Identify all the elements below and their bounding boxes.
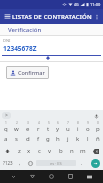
staticText: q (4, 125, 8, 133)
button[interactable]: j (63, 133, 73, 145)
staticText: 7 (67, 121, 69, 125)
button[interactable]: 0 (93, 121, 103, 133)
staticText: u (66, 125, 70, 133)
button[interactable]: ñ (93, 133, 103, 145)
staticText: v (48, 147, 52, 155)
button[interactable]: a (0, 133, 11, 145)
staticText: es · ES (50, 161, 62, 166)
button[interactable]: 9 (83, 121, 93, 133)
staticText: x (27, 147, 31, 155)
button[interactable]: s (11, 133, 22, 145)
button[interactable]: Ocultar teclado (8, 171, 19, 182)
button[interactable]: k (73, 133, 83, 145)
staticText: > (5, 112, 8, 119)
button[interactable]: m (77, 145, 88, 157)
staticText: ?123 (3, 160, 13, 166)
staticText: 1 (5, 121, 7, 125)
staticText: ñ (96, 135, 100, 143)
button[interactable]: Verificación (0, 24, 103, 35)
button[interactable]: Mayúsculas (0, 145, 14, 157)
staticText: r (37, 125, 40, 133)
button[interactable]: f (33, 133, 43, 145)
button[interactable]: 3 (22, 121, 33, 133)
button[interactable]: ?123 (0, 157, 15, 169)
staticText: g (46, 135, 50, 143)
staticText: 4 (38, 121, 40, 125)
staticText: c (38, 147, 41, 155)
button[interactable]: 1 (0, 121, 11, 133)
button[interactable]: Intro (91, 159, 100, 168)
button[interactable]: Punto (77, 157, 87, 169)
staticText: 4G (74, 2, 79, 7)
button[interactable]: b (55, 145, 66, 157)
button[interactable]: v (44, 145, 55, 157)
button[interactable]: l (83, 133, 93, 145)
button[interactable]: 4 (33, 121, 43, 133)
button[interactable]: c (34, 145, 44, 157)
button[interactable]: n (66, 145, 77, 157)
button[interactable]: Borrar (88, 145, 103, 157)
button[interactable]: d (22, 133, 33, 145)
staticText: j (67, 135, 69, 143)
button[interactable]: z (14, 145, 24, 157)
button[interactable]: h (53, 133, 63, 145)
staticText: d (26, 135, 30, 143)
staticText: n (70, 147, 74, 155)
staticText: h (56, 135, 60, 143)
staticText: b (59, 147, 63, 155)
button[interactable]: Teclado (84, 171, 95, 182)
button[interactable]: Coma (15, 157, 25, 169)
button[interactable]: 5 (43, 121, 53, 133)
button[interactable]: 7 (63, 121, 73, 133)
staticText: z (18, 147, 21, 155)
button[interactable]: Espacio (36, 160, 76, 166)
staticText: , (19, 160, 21, 167)
staticText: 9 (87, 121, 89, 125)
staticText: . (81, 160, 83, 167)
staticText: LISTAS DE CONTRATACIÓN (12, 13, 92, 21)
staticText: Verificación (8, 26, 42, 34)
button[interactable]: Atrás (27, 171, 38, 182)
staticText: e (26, 125, 30, 133)
staticText: 5 (48, 121, 50, 125)
staticText: 6 (57, 121, 59, 125)
button[interactable]: Sugerencias (2, 112, 11, 119)
staticText: w (14, 125, 19, 133)
staticText: f (37, 135, 40, 143)
button[interactable]: 2 (11, 121, 22, 133)
staticText: DNI (3, 38, 11, 43)
staticText: p (96, 125, 100, 133)
staticText: Confirmar (18, 69, 45, 76)
button[interactable]: Más opciones (91, 11, 102, 22)
staticText: 3 (27, 121, 29, 125)
staticText: 12345678Z (3, 44, 37, 53)
button[interactable]: 12345678Z (0, 44, 103, 56)
staticText: y (56, 125, 60, 133)
staticText: i (77, 125, 79, 133)
staticText: k (76, 135, 80, 143)
button[interactable]: Inicio (46, 171, 57, 182)
staticText: a (4, 135, 8, 143)
staticText: 2 (16, 121, 18, 125)
button[interactable]: Confirmar (6, 66, 49, 79)
staticText: l (87, 135, 89, 143)
staticText: s (15, 135, 18, 143)
button[interactable]: x (24, 145, 34, 157)
button[interactable]: 6 (53, 121, 63, 133)
staticText: t (47, 125, 50, 133)
staticText: 11:00 (90, 2, 101, 7)
button[interactable]: Emoji (25, 157, 35, 169)
button[interactable]: g (43, 133, 53, 145)
button[interactable]: Recientes (65, 171, 76, 182)
staticText: 8 (77, 121, 79, 125)
staticText: 0 (97, 121, 99, 125)
staticText: m (80, 147, 86, 155)
button[interactable]: 8 (73, 121, 83, 133)
button[interactable]: Menú (2, 11, 13, 22)
staticText: o (86, 125, 90, 133)
button[interactable]: Voz (92, 112, 100, 120)
